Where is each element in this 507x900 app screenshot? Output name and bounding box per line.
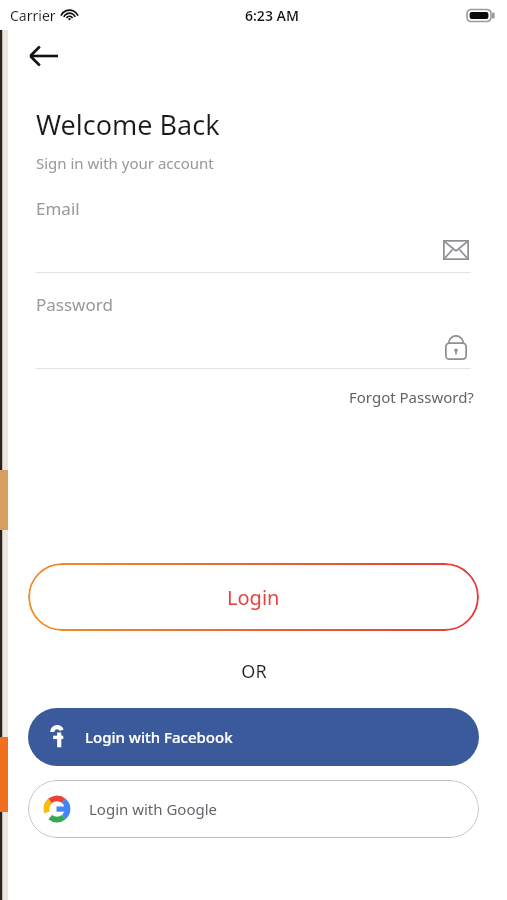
staticText: 6:23 AM <box>245 6 299 25</box>
button[interactable]: Password <box>441 331 471 361</box>
staticText: Login <box>227 584 280 611</box>
button[interactable]: Back <box>18 36 70 76</box>
button[interactable]: Forgot Password? <box>345 383 478 411</box>
staticText: Password <box>36 293 113 316</box>
staticText: OR <box>241 659 267 684</box>
staticText: Welcome Back <box>36 106 220 143</box>
staticText: Login with Google <box>89 799 218 819</box>
button[interactable]: Login <box>28 563 479 631</box>
staticText: Carrier <box>10 6 56 25</box>
staticText: Login with Facebook <box>85 727 233 747</box>
button[interactable]: Password <box>36 293 471 369</box>
staticText: Email <box>36 197 80 220</box>
button[interactable]: Email <box>441 235 471 265</box>
staticText: Sign in with your account <box>36 153 214 173</box>
staticText: Forgot Password? <box>349 387 474 407</box>
button[interactable]: Login with Google <box>28 780 479 838</box>
button[interactable]: Email <box>36 197 471 273</box>
button[interactable]: Login with Facebook <box>28 708 479 766</box>
